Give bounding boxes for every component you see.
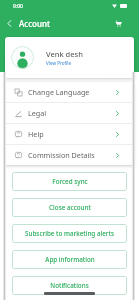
staticText: Legal: [28, 108, 47, 118]
button[interactable]: Venk desh: [5, 37, 134, 78]
button[interactable]: Shopping cart: [113, 18, 123, 28]
staticText: Forced sync: [52, 177, 88, 186]
button[interactable]: Subscribe to marketing alerts: [12, 224, 127, 243]
button[interactable]: Help: [5, 124, 134, 144]
button[interactable]: Close account: [12, 198, 127, 217]
staticText: View Profile: [46, 60, 72, 66]
staticText: Subscribe to marketing alerts: [25, 229, 114, 238]
button[interactable]: Notifications: [12, 276, 127, 295]
staticText: Venk desh: [46, 49, 83, 59]
staticText: Account: [19, 18, 51, 29]
staticText: 9:00: [13, 3, 23, 10]
staticText: Close account: [49, 203, 91, 212]
button[interactable]: Forced sync: [12, 172, 127, 191]
staticText: Commission Details: [28, 150, 95, 160]
button[interactable]: App information: [12, 250, 127, 269]
button[interactable]: Change Language: [5, 82, 134, 102]
staticText: Change Language: [28, 87, 90, 97]
button[interactable]: Back: [2, 16, 16, 30]
staticText: Notifications: [50, 281, 89, 290]
button[interactable]: Commission Details: [5, 145, 134, 165]
staticText: Help: [28, 129, 44, 139]
button[interactable]: Legal: [5, 103, 134, 123]
staticText: App information: [45, 255, 95, 264]
